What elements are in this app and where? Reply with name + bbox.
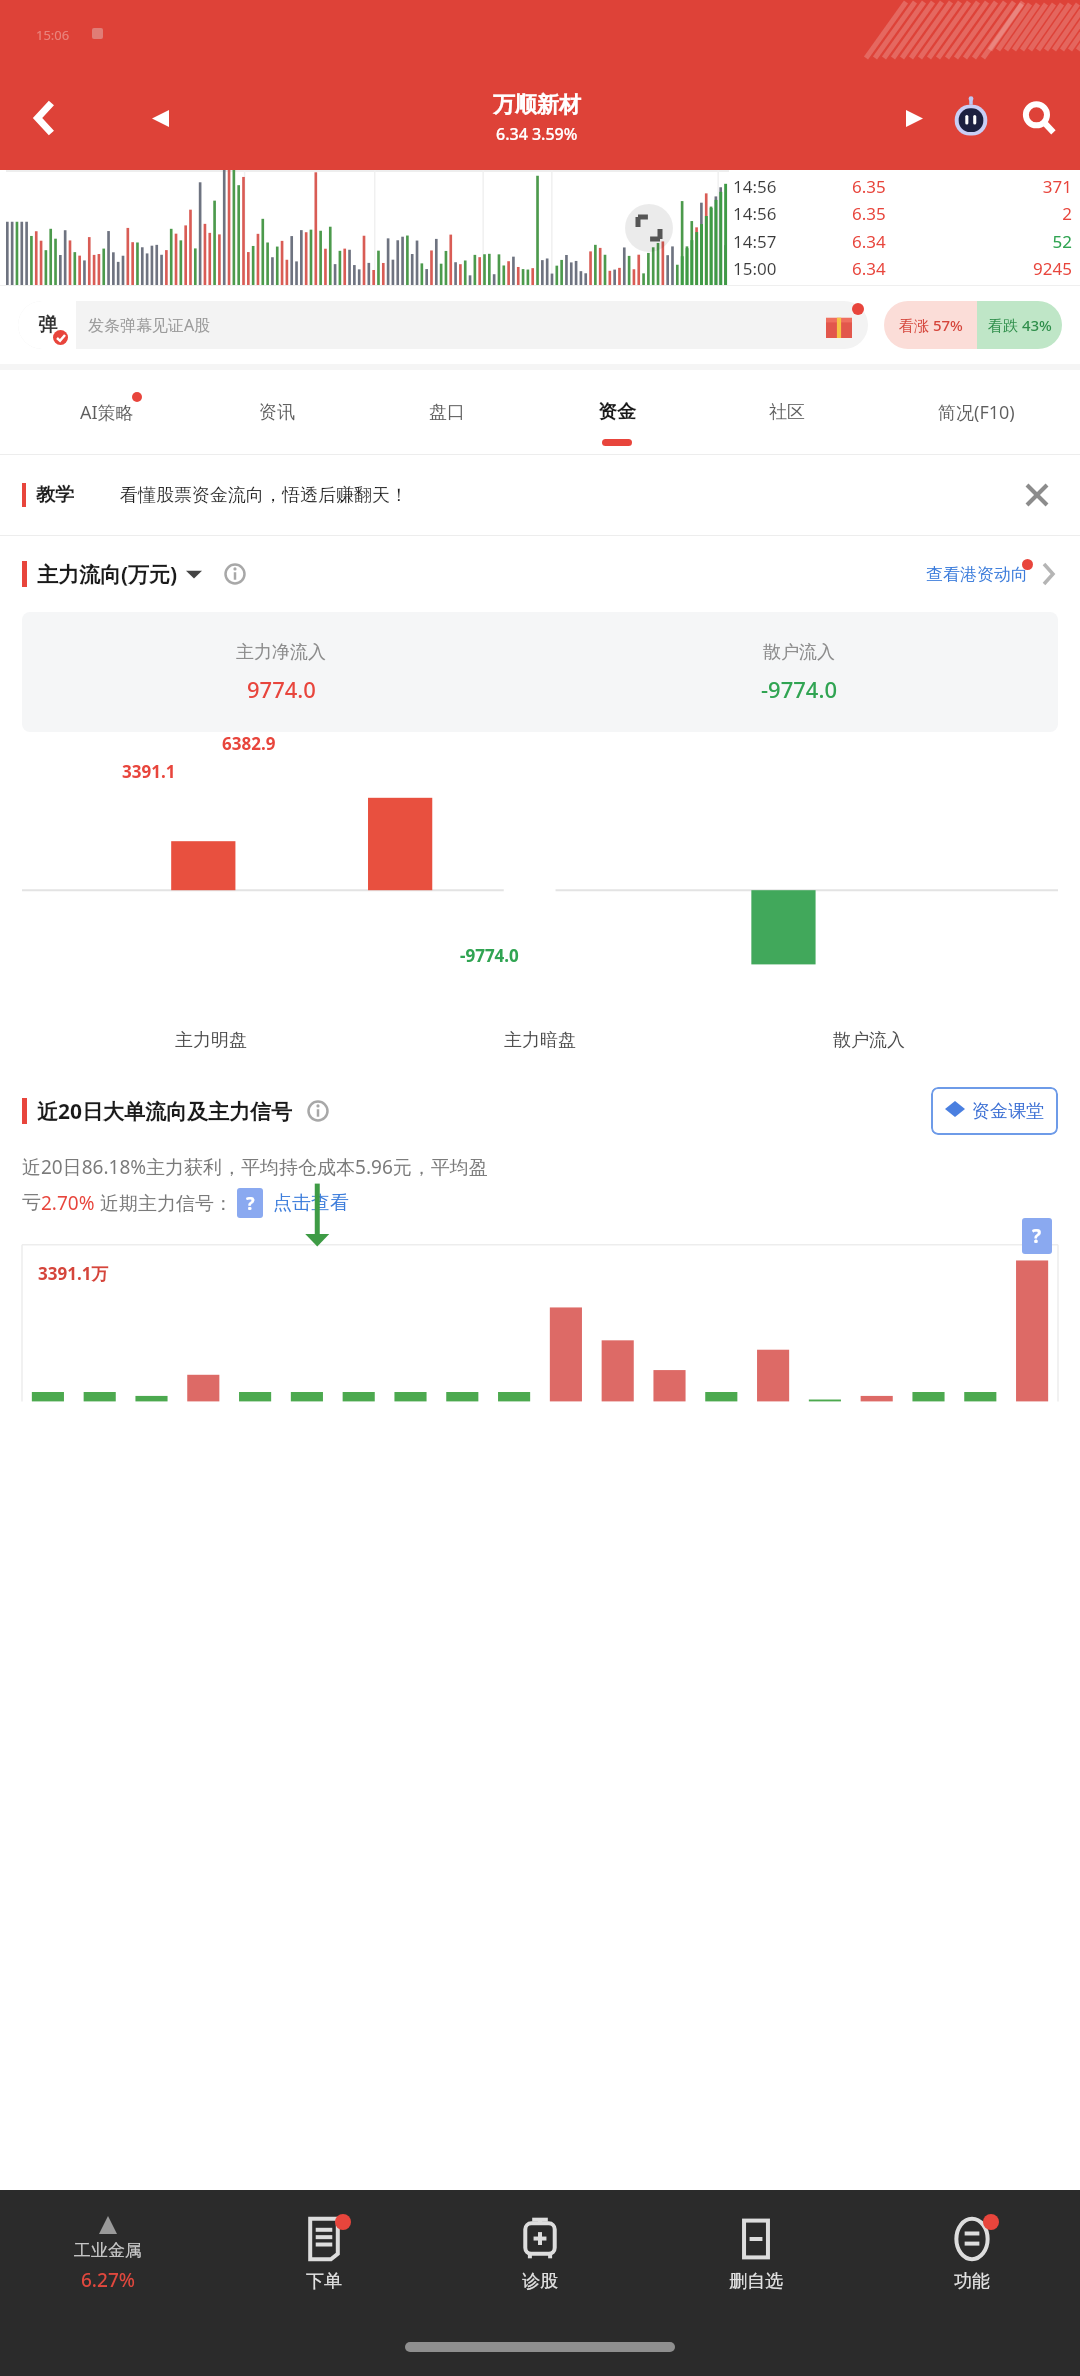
staticText: 2.70% — [41, 1190, 95, 1216]
staticText: 社区 — [769, 401, 805, 424]
button[interactable]: 万顺新材 — [184, 91, 890, 145]
staticText: 教学 — [36, 483, 74, 507]
staticText: 功能 — [954, 2270, 990, 2293]
staticText: 主力净流入 — [236, 641, 326, 664]
staticText: 6.35 — [852, 175, 953, 198]
staticText: 15:00 — [733, 257, 852, 280]
staticText: 9245 — [953, 257, 1072, 280]
button[interactable] — [186, 566, 202, 582]
staticText: 近期主力信号： — [95, 1190, 233, 1216]
staticText: 资金课堂 — [972, 1100, 1044, 1123]
staticText: 6.35 — [852, 202, 953, 225]
staticText: 9774.0 — [247, 674, 316, 704]
staticText: 点击查看 — [273, 1191, 349, 1215]
button[interactable]: Info — [224, 563, 246, 585]
staticText: 371 — [953, 175, 1072, 198]
staticText: 简况(F10) — [938, 400, 1015, 425]
button[interactable]: 14:56 — [733, 170, 1072, 285]
staticText: AI策略 — [80, 400, 134, 425]
staticText: 盘口 — [429, 401, 465, 424]
button[interactable]: 资金课堂 — [931, 1087, 1058, 1135]
button[interactable]: 盘口 — [362, 370, 532, 454]
staticText: 主力明盘 — [175, 1029, 247, 1052]
button[interactable]: 点击查看 — [273, 1191, 349, 1215]
staticText: ? — [1032, 1223, 1042, 1249]
staticText: 近20日大单流向及主力信号 — [37, 1097, 293, 1126]
staticText: 发条弹幕见证A股 — [88, 314, 211, 336]
staticText: 诊股 — [522, 2270, 558, 2293]
staticText: 6382.9 — [222, 732, 276, 755]
staticText: 查看港资动向 — [926, 564, 1028, 585]
staticText: 6.34 — [852, 257, 953, 280]
staticText: 散户流入 — [833, 1029, 905, 1052]
staticText: 近20日86.18%主力获利，平均持仓成本5.96元，平均盈 — [22, 1154, 488, 1180]
staticText: 万顺新材 — [493, 91, 581, 119]
button[interactable]: Next stock — [890, 94, 938, 142]
button[interactable]: 下单 — [216, 2190, 432, 2318]
staticText: -9774.0 — [761, 674, 837, 704]
button[interactable]: Expand chart — [625, 204, 673, 252]
button[interactable]: Previous stock — [136, 94, 184, 142]
staticText: 主力流向(万元) — [37, 560, 178, 589]
staticText: 15:06 — [36, 26, 70, 44]
staticText: 资讯 — [259, 401, 295, 424]
button[interactable]: 功能 — [864, 2190, 1080, 2318]
staticText: 2 — [953, 202, 1072, 225]
button[interactable]: 工业金属 — [0, 2190, 216, 2318]
staticText: 14:57 — [733, 230, 852, 253]
staticText: 弹 — [38, 313, 57, 337]
staticText: 工业金属 — [74, 2240, 142, 2261]
button[interactable]: 主力净流入 — [22, 612, 1058, 732]
button[interactable]: 看涨 57% — [884, 301, 1062, 349]
button[interactable]: Search — [1012, 91, 1066, 145]
staticText: 看涨 57% — [899, 315, 963, 335]
button[interactable]: 查看港资动向 — [926, 564, 1028, 585]
button[interactable]: Close — [1016, 474, 1058, 516]
button[interactable]: 弹 — [18, 301, 868, 349]
staticText: -9774.0 — [460, 944, 519, 967]
staticText: 3391.1 — [122, 760, 176, 783]
button[interactable]: 删自选 — [648, 2190, 864, 2318]
staticText: 亏 — [22, 1191, 41, 1215]
button[interactable]: 资金 — [532, 370, 702, 454]
staticText: 看懂股票资金流向，悟透后赚翻天！ — [120, 484, 408, 507]
staticText: 删自选 — [729, 2270, 783, 2293]
button[interactable]: 诊股 — [432, 2190, 648, 2318]
staticText: 资金 — [598, 400, 636, 424]
staticText: 52 — [953, 230, 1072, 253]
staticText: 下单 — [306, 2270, 342, 2293]
button[interactable]: AI策略 — [22, 370, 192, 454]
staticText: 看跌 43% — [988, 315, 1052, 335]
staticText: 14:56 — [733, 202, 852, 225]
button[interactable]: AI assistant — [944, 91, 998, 145]
button[interactable]: 资讯 — [192, 370, 362, 454]
button[interactable]: 社区 — [702, 370, 872, 454]
staticText: 主力暗盘 — [504, 1029, 576, 1052]
button[interactable]: 简况(F10) — [872, 370, 1080, 454]
staticText: 散户流入 — [763, 641, 835, 664]
staticText: 6.34 — [852, 230, 953, 253]
button[interactable]: Info — [307, 1100, 329, 1122]
staticText: 3391.1万 — [38, 1262, 109, 1285]
staticText: 6.34 3.59% — [496, 123, 578, 145]
staticText: 14:56 — [733, 175, 852, 198]
staticText: ? — [246, 1191, 255, 1216]
button[interactable]: Back — [14, 86, 78, 150]
staticText: 6.27% — [81, 2267, 135, 2293]
